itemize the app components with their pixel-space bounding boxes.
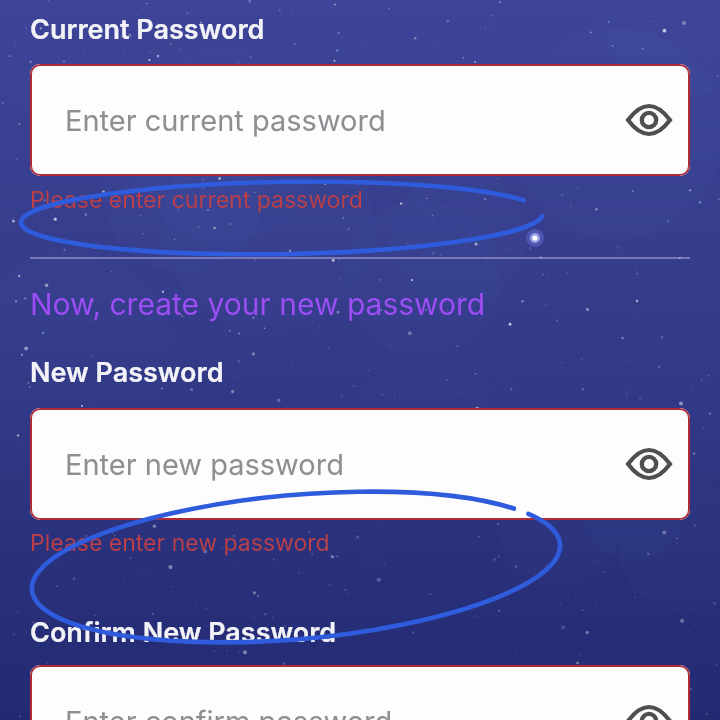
button[interactable]: Enter current password xyxy=(30,64,690,176)
staticText: Enter new password xyxy=(65,447,344,482)
button[interactable] xyxy=(626,701,672,720)
button[interactable]: Enter new password xyxy=(30,408,690,520)
staticText: Now, create your new password xyxy=(30,286,486,322)
staticText: Please enter current password xyxy=(30,186,363,214)
staticText: Please enter new password xyxy=(30,529,330,557)
staticText: Enter current password xyxy=(65,103,386,138)
button[interactable]: Enter confirm password xyxy=(30,665,690,720)
staticText: Current Password xyxy=(30,13,265,46)
button[interactable] xyxy=(626,444,672,484)
staticText: Confirm New Password xyxy=(30,616,337,649)
button[interactable] xyxy=(626,100,672,140)
staticText: Enter confirm password xyxy=(65,704,393,720)
staticText: New Password xyxy=(30,356,224,389)
